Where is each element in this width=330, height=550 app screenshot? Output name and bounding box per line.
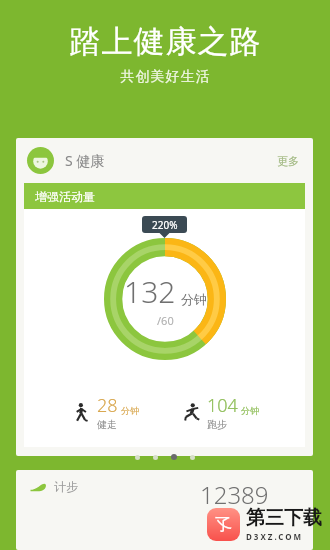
button[interactable]: 104 <box>181 393 259 431</box>
staticText: 132 <box>124 271 176 312</box>
staticText: 分钟 <box>241 405 259 416</box>
staticText: 孓 <box>215 514 232 535</box>
button[interactable]: Steps <box>16 470 313 550</box>
staticText: 增强活动量 <box>35 189 95 204</box>
staticText: 104 <box>207 393 238 418</box>
staticText: 踏上健康之路 <box>69 22 261 61</box>
staticText: 220% <box>152 218 178 232</box>
staticText: /60 <box>157 313 174 328</box>
staticText: D3XZ.COM <box>246 531 304 542</box>
button[interactable]: 更多 <box>274 149 302 173</box>
button[interactable]: 增强活动量 <box>24 183 305 209</box>
staticText: 分钟 <box>181 291 207 307</box>
staticText: 分钟 <box>121 405 139 416</box>
staticText: 跑步 <box>207 418 227 431</box>
staticText: 更多 <box>277 154 299 168</box>
staticText: 第三下载 <box>246 506 322 530</box>
other: Steps <box>30 481 47 495</box>
button[interactable]: 28 <box>71 393 139 431</box>
button[interactable]: Profile <box>16 138 313 183</box>
staticText: 12389 <box>200 478 269 511</box>
staticText: 28 <box>97 393 118 418</box>
staticText: S 健康 <box>65 151 105 170</box>
staticText: 健走 <box>97 418 117 431</box>
staticText: 共创美好生活 <box>120 68 210 86</box>
staticText: 计步 <box>54 479 78 494</box>
other: Profile <box>27 147 54 174</box>
